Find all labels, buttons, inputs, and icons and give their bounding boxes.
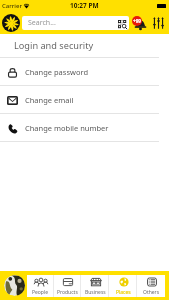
button[interactable]: Products [54, 275, 81, 297]
staticText: Places [116, 289, 131, 296]
staticText: People [32, 289, 49, 296]
staticText: Business [85, 289, 106, 296]
button[interactable]: Search... [22, 16, 129, 30]
button[interactable]: Business [81, 275, 109, 297]
staticText: Change email [25, 95, 74, 105]
button[interactable]: Logo [2, 14, 20, 32]
button[interactable]: People [27, 275, 54, 297]
button[interactable]: Change password [0, 58, 169, 85]
staticText: Change password [25, 67, 89, 77]
button[interactable]: Scan code [117, 19, 128, 30]
button[interactable]: Change mobile number [0, 114, 169, 141]
staticText: Carrier [2, 2, 22, 10]
button[interactable]: Notifications [132, 16, 148, 30]
button[interactable]: Filter [153, 17, 164, 29]
staticText: Change mobile number [25, 123, 109, 133]
staticText: Products [57, 289, 78, 296]
staticText: Login and security [14, 39, 94, 52]
staticText: Search... [28, 18, 56, 28]
staticText: +99 [133, 18, 141, 24]
staticText: 10:27 PM [70, 1, 99, 10]
staticText: Others [143, 289, 160, 296]
button[interactable]: Others [137, 275, 165, 297]
button[interactable]: Profile [4, 275, 25, 296]
button[interactable]: Change email [0, 86, 169, 113]
button[interactable]: Places [109, 275, 137, 297]
